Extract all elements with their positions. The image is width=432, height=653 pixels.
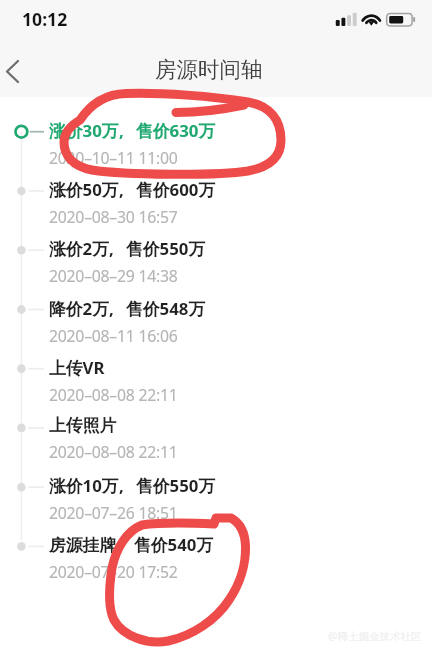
staticText: ,: [109, 297, 114, 320]
staticText: 2020–08–08 22:11: [49, 384, 178, 406]
staticText: 上传照片: [49, 415, 117, 436]
staticText: 2020–10–11 11:00: [49, 147, 178, 169]
staticText: ,: [119, 178, 124, 201]
button[interactable]: 涨价10万: [49, 474, 409, 524]
staticText: @稀土掘金技术社区: [328, 629, 422, 643]
staticText: 降价2万: [49, 297, 109, 320]
staticText: 售价550万: [136, 474, 216, 497]
staticText: 售价548万: [126, 297, 206, 320]
staticText: 2020–08–30 16:57: [49, 206, 178, 228]
staticText: 房源时间轴: [155, 56, 263, 83]
staticText: 涨价50万: [49, 178, 119, 201]
staticText: ,: [117, 533, 122, 556]
staticText: 售价550万: [126, 237, 206, 260]
staticText: 房源挂牌: [49, 535, 117, 556]
button[interactable]: 降价2万: [49, 297, 409, 347]
staticText: 售价540万: [134, 533, 214, 556]
staticText: 2020–08–11 16:06: [49, 325, 178, 347]
staticText: 2020–08–08 22:11: [49, 441, 178, 463]
staticText: 涨价30万: [49, 119, 119, 142]
staticText: 售价600万: [136, 178, 216, 201]
staticText: 上传VR: [49, 356, 105, 379]
button[interactable]: 上传照片: [49, 415, 409, 463]
staticText: 2020–07–20 17:52: [49, 561, 178, 583]
staticText: 2020–07–26 18:51: [49, 502, 178, 524]
button[interactable]: 上传VR: [49, 356, 409, 406]
staticText: 涨价10万: [49, 474, 119, 497]
button[interactable]: 涨价2万: [49, 237, 409, 287]
staticText: ,: [119, 119, 124, 142]
button[interactable]: 涨价50万: [49, 178, 409, 228]
staticText: 2020–08–29 14:38: [49, 265, 178, 287]
staticText: ,: [119, 474, 124, 497]
button[interactable]: Back: [0, 45, 44, 97]
staticText: ,: [109, 237, 114, 260]
button[interactable]: 涨价30万: [49, 119, 409, 169]
staticText: 10:12: [22, 7, 68, 31]
staticText: 售价630万: [136, 119, 216, 142]
button[interactable]: 房源挂牌: [49, 533, 409, 583]
staticText: 涨价2万: [49, 237, 109, 260]
